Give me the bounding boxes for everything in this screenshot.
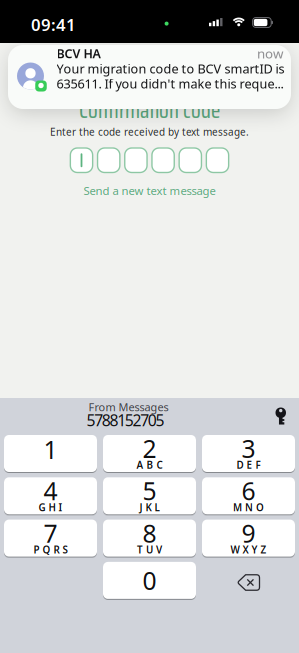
button[interactable]: 4: [4, 477, 97, 514]
button[interactable]: 6: [202, 477, 295, 514]
staticText: 09:41: [31, 13, 76, 36]
button[interactable]: 9: [202, 520, 295, 557]
button[interactable]: Notification from BCV HA: [8, 45, 291, 109]
button[interactable]: 0: [103, 562, 196, 599]
staticText: 5788152705: [87, 409, 164, 431]
button[interactable]: Send a new text message: [83, 183, 215, 198]
staticText: J K L: [139, 501, 159, 514]
staticText: 2: [142, 432, 156, 465]
staticText: Your migration code to BCV smartID is: [56, 60, 284, 77]
staticText: 3: [241, 432, 255, 465]
staticText: 0: [142, 564, 156, 597]
staticText: BCV HA: [56, 45, 100, 62]
button[interactable]: From Messages: [0, 398, 299, 435]
staticText: D E F: [236, 458, 260, 472]
staticText: G H I: [38, 501, 62, 514]
button[interactable]: Delete: [202, 562, 295, 599]
button[interactable]: 5: [103, 477, 196, 514]
staticText: From Messages: [88, 399, 168, 414]
staticText: W X Y Z: [230, 543, 266, 556]
staticText: 1: [43, 433, 57, 466]
staticText: Confirmation code: [79, 93, 220, 128]
staticText: 8: [142, 516, 156, 550]
staticText: 6: [241, 474, 255, 508]
button[interactable]: 3: [202, 435, 295, 472]
staticText: Send a new text message: [83, 183, 215, 198]
button[interactable]: 8: [103, 520, 196, 557]
staticText: P Q R S: [33, 543, 67, 556]
button[interactable]: 1: [4, 435, 97, 472]
staticText: 635611. If you didn't make this reque...: [56, 75, 283, 92]
staticText: A B C: [136, 458, 162, 472]
staticText: 4: [43, 474, 57, 508]
staticText: 9: [241, 516, 255, 550]
button[interactable]: 7: [4, 520, 97, 557]
staticText: M N O: [233, 501, 264, 514]
staticText: 7: [43, 516, 57, 550]
button[interactable]: Confirmation code input: [70, 148, 229, 172]
staticText: 5: [142, 474, 156, 508]
staticText: now: [257, 44, 283, 62]
staticText: Enter the code received by text message.: [50, 125, 249, 139]
button[interactable]: 2: [103, 435, 196, 472]
staticText: T U V: [137, 543, 162, 556]
